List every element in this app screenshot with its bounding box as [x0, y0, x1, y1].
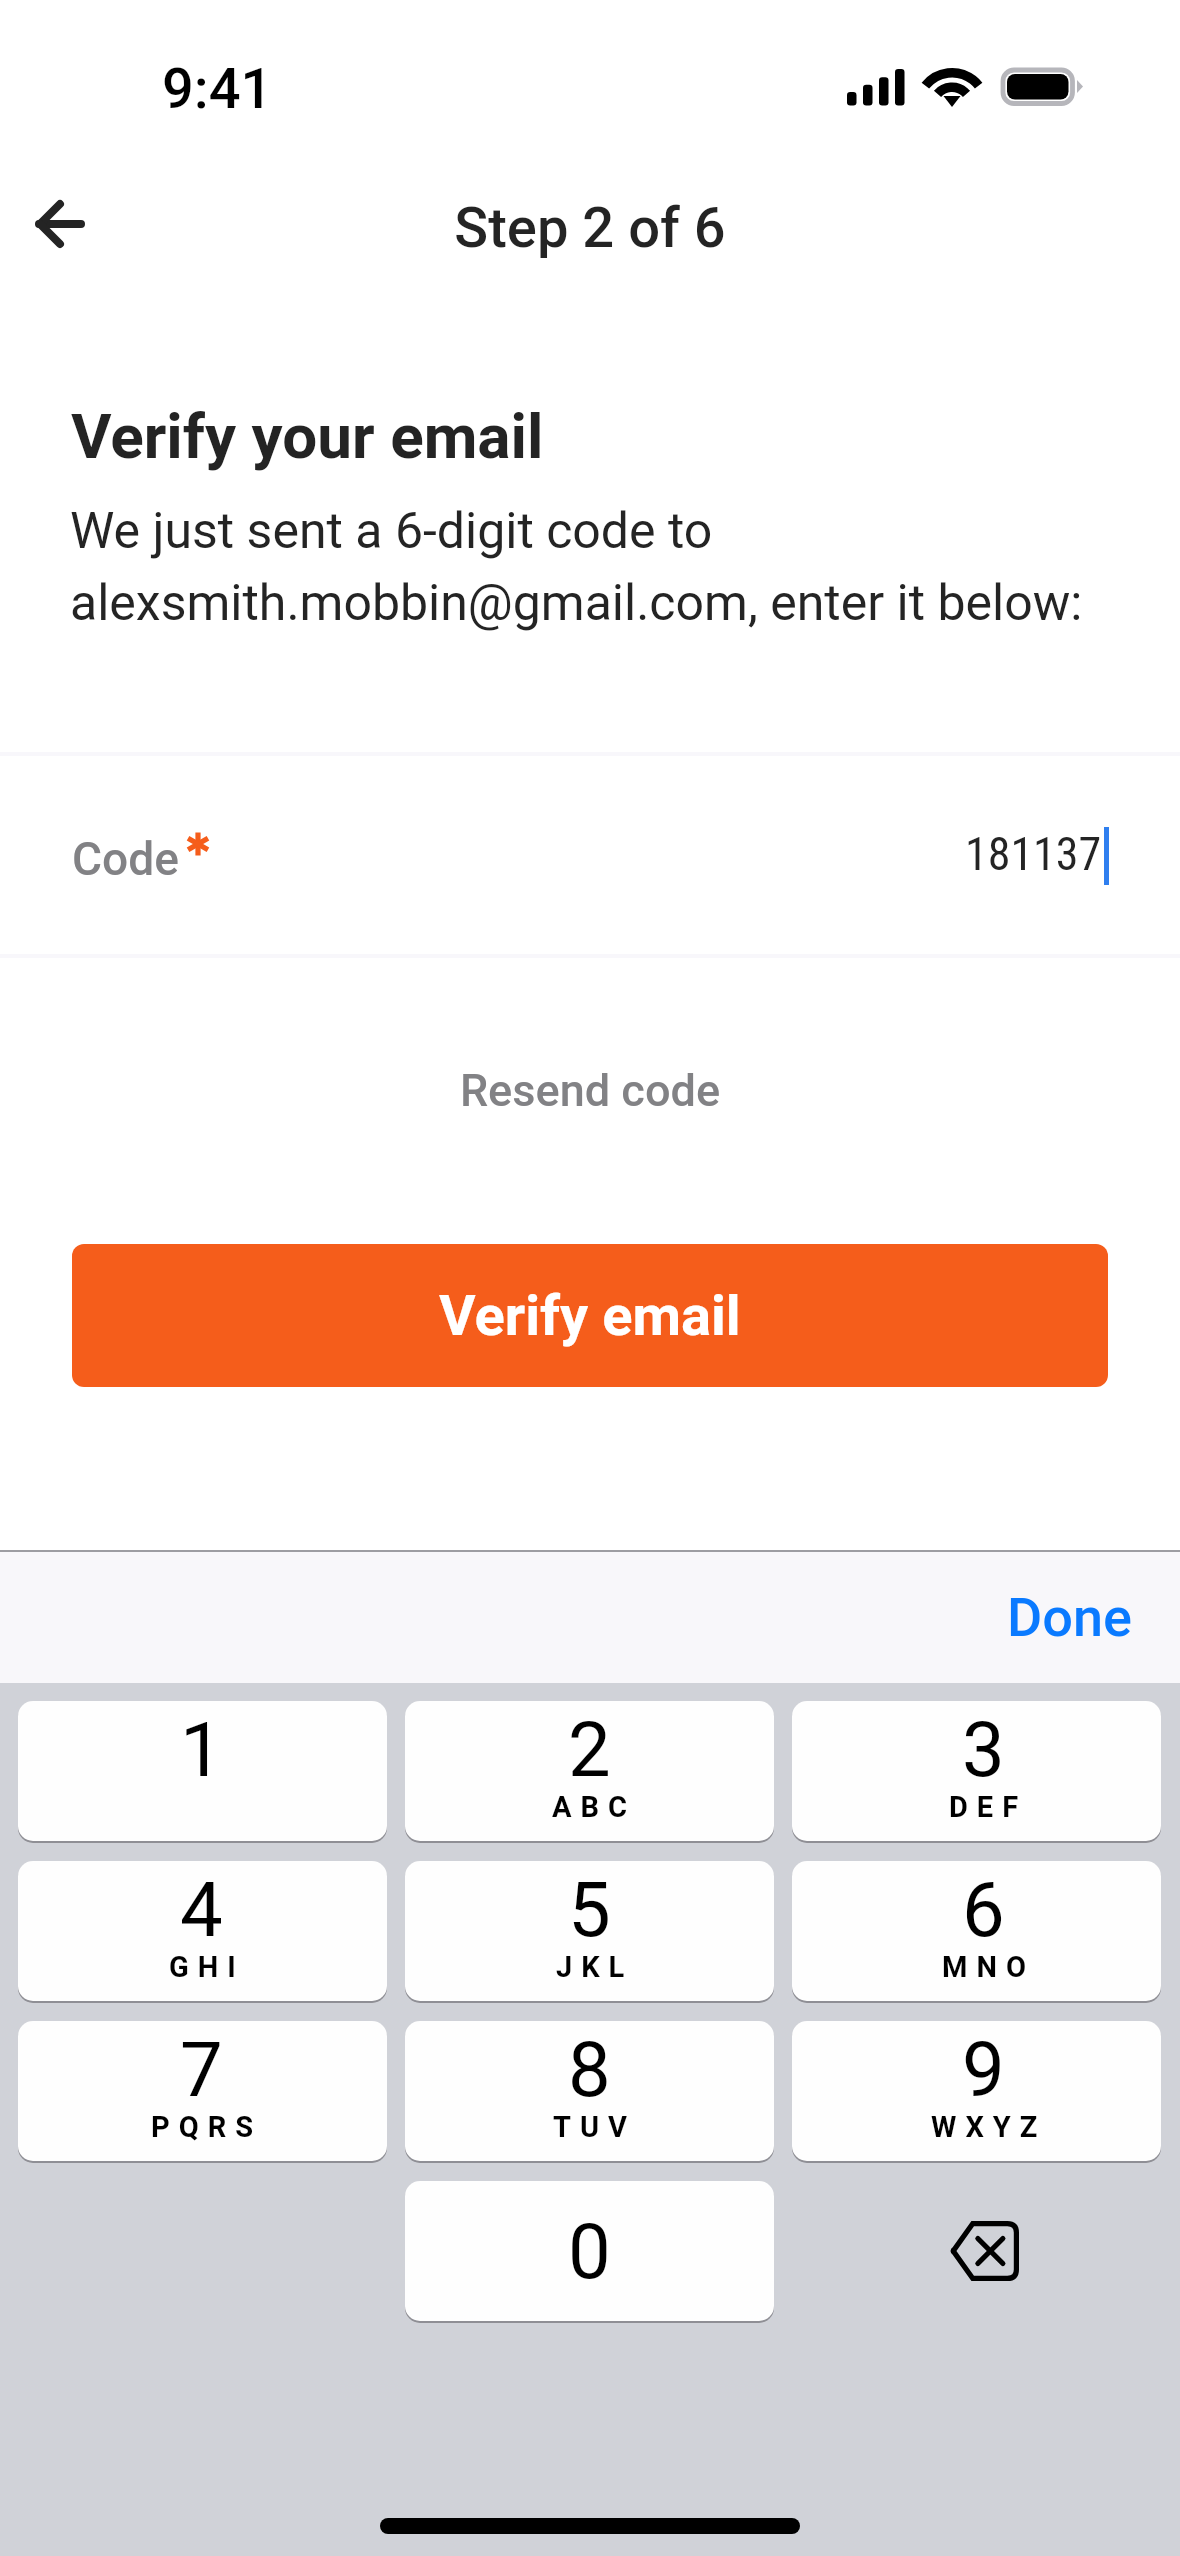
- staticText: MNO: [942, 1950, 1035, 1984]
- staticText: 9:41: [162, 56, 273, 122]
- button[interactable]: 8: [405, 2021, 774, 2161]
- staticText: 3: [962, 1705, 1005, 1794]
- staticText: Code: [72, 832, 179, 886]
- button[interactable]: Code: [0, 759, 1180, 959]
- staticText: DEF: [949, 1790, 1028, 1824]
- button[interactable]: Resend code: [434, 1048, 747, 1133]
- button[interactable]: 7: [18, 2021, 387, 2161]
- button[interactable]: 9: [792, 2021, 1161, 2161]
- staticText: GHI: [169, 1950, 245, 1984]
- staticText: 9: [962, 2025, 1005, 2114]
- staticText: 181137: [965, 827, 1102, 881]
- staticText: 7: [180, 2025, 223, 2114]
- staticText: Done: [1007, 1586, 1133, 1649]
- staticText: 6: [962, 1865, 1005, 1954]
- staticText: 5: [568, 1865, 611, 1954]
- button[interactable]: 6: [792, 1861, 1161, 2001]
- button[interactable]: Verify email: [72, 1244, 1108, 1387]
- button[interactable]: Back: [17, 181, 103, 267]
- staticText: ABC: [552, 1790, 637, 1824]
- button[interactable]: 2: [405, 1701, 774, 1841]
- staticText: Verify your email: [71, 400, 544, 473]
- button[interactable]: 1: [18, 1701, 387, 1841]
- staticText: Step 2 of 6: [0, 195, 1180, 261]
- staticText: TUV: [553, 2110, 636, 2144]
- staticText: Resend code: [460, 1064, 721, 1117]
- staticText: WXYZ: [931, 2110, 1047, 2144]
- button[interactable]: Backspace: [792, 2181, 1161, 2321]
- staticText: Verify email: [439, 1283, 741, 1349]
- button[interactable]: Done: [960, 1568, 1180, 1667]
- button[interactable]: 5: [405, 1861, 774, 2001]
- staticText: We just sent a 6-digit code to alexsmith…: [70, 502, 1115, 632]
- button[interactable]: 3: [792, 1701, 1161, 1841]
- button[interactable]: 0: [405, 2181, 774, 2321]
- staticText: JKL: [556, 1950, 634, 1984]
- staticText: PQRS: [151, 2110, 263, 2144]
- button[interactable]: 4: [18, 1861, 387, 2001]
- staticText: 1: [180, 1705, 223, 1794]
- staticText: 2: [568, 1705, 611, 1794]
- staticText: 8: [568, 2025, 611, 2114]
- staticText: 4: [180, 1865, 223, 1954]
- staticText: 0: [568, 2207, 611, 2296]
